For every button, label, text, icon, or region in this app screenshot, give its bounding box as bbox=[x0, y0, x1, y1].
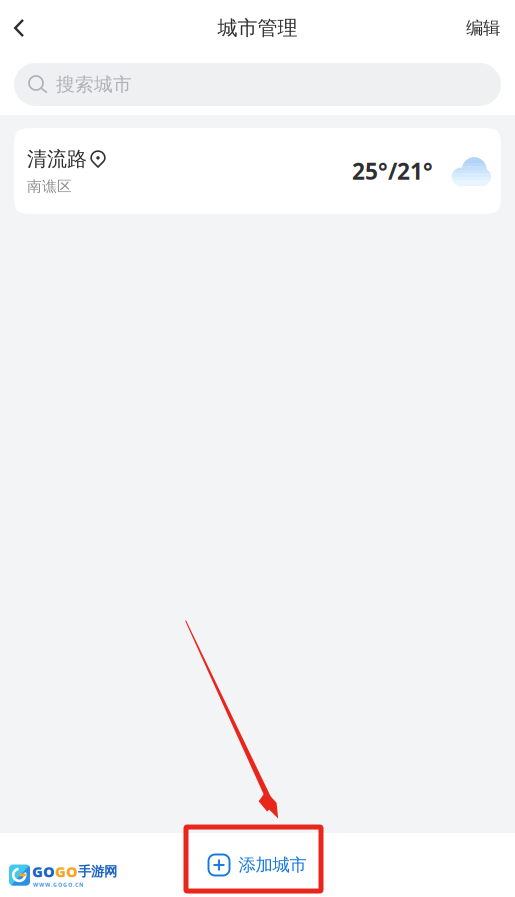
staticText: 搜索城市 bbox=[56, 73, 132, 96]
staticText: GO bbox=[55, 862, 78, 881]
staticText: GO bbox=[32, 862, 55, 881]
button[interactable]: 清流路 bbox=[14, 128, 501, 214]
staticText: 清流路 bbox=[27, 147, 87, 171]
staticText: 编辑 bbox=[466, 17, 500, 39]
staticText: 添加城市 bbox=[238, 854, 306, 876]
staticText: W W W . G O G O . C N bbox=[33, 881, 83, 888]
staticText: 南谯区 bbox=[27, 177, 72, 195]
button[interactable]: 返回 bbox=[14, 6, 58, 50]
staticText: 城市管理 bbox=[217, 16, 297, 40]
button[interactable]: 添加城市 bbox=[0, 833, 515, 897]
staticText: 25°/21° bbox=[352, 156, 433, 186]
staticText: 手游网 bbox=[78, 863, 117, 880]
button[interactable]: 搜索城市 bbox=[14, 63, 501, 106]
button[interactable]: 编辑 bbox=[452, 5, 500, 51]
